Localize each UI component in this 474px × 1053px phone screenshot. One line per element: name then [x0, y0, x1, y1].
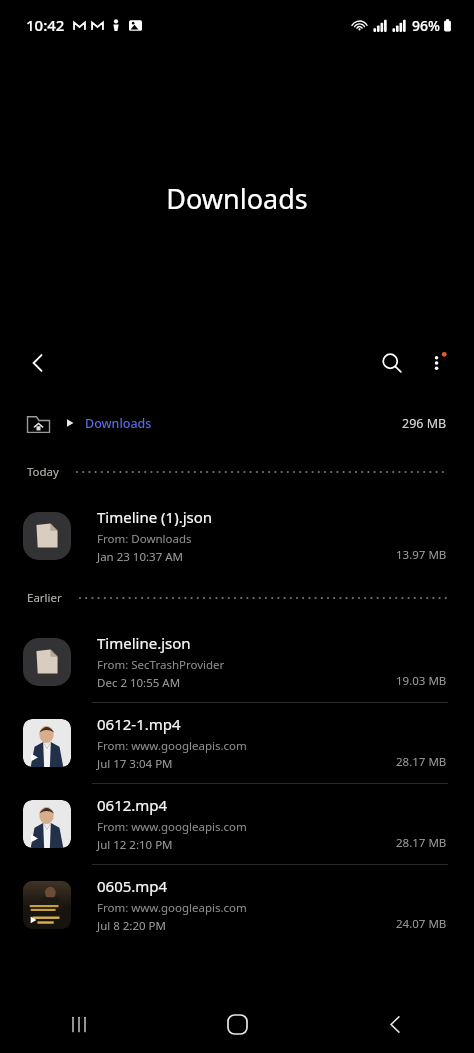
staticText: From: www.googleapis.com	[97, 738, 247, 754]
staticText: 24.07 MB	[396, 916, 447, 932]
staticText: Downloads	[0, 180, 474, 217]
button[interactable]: 0605.mp4	[0, 865, 474, 945]
button[interactable]: 0612-1.mp4	[0, 703, 474, 784]
staticText: Today	[27, 464, 59, 480]
button[interactable]: Recents	[0, 995, 158, 1053]
button[interactable]: 0612.mp4	[0, 784, 474, 865]
staticText: Jul 12 2:10 PM	[97, 837, 173, 853]
button[interactable]: Timeline (1).json	[0, 496, 474, 576]
staticText: Earlier	[27, 590, 62, 606]
staticText: Downloads	[85, 415, 152, 432]
staticText: 19.03 MB	[396, 673, 447, 689]
staticText: Jan 23 10:37 AM	[97, 549, 183, 565]
staticText: 0605.mp4	[97, 876, 168, 896]
staticText: 13.97 MB	[396, 547, 447, 563]
staticText: 28.17 MB	[396, 754, 447, 770]
staticText: Timeline (1).json	[97, 507, 213, 527]
staticText: Jul 17 3:04 PM	[97, 756, 173, 772]
staticText: Dec 2 10:55 AM	[97, 675, 181, 691]
button[interactable]: Search	[370, 341, 414, 385]
staticText: From: www.googleapis.com	[97, 900, 247, 916]
staticText: 96%	[412, 16, 440, 35]
staticText: From: SecTrashProvider	[97, 657, 225, 673]
button[interactable]: More options	[416, 341, 460, 385]
staticText: 0612.mp4	[97, 795, 168, 815]
staticText: 28.17 MB	[396, 835, 447, 851]
button[interactable]: Downloads	[0, 408, 474, 438]
button[interactable]: Home	[158, 995, 316, 1053]
staticText: From: www.googleapis.com	[97, 819, 247, 835]
staticText: 0612-1.mp4	[97, 714, 181, 734]
button[interactable]: Back	[316, 995, 474, 1053]
staticText: Jul 8 2:20 PM	[97, 918, 166, 934]
staticText: Timeline.json	[97, 633, 191, 653]
button[interactable]: Timeline.json	[0, 622, 474, 703]
button[interactable]: Back	[16, 341, 60, 385]
staticText: 296 MB	[402, 415, 447, 432]
staticText: 10:42	[26, 15, 65, 35]
staticText: From: Downloads	[97, 531, 192, 547]
